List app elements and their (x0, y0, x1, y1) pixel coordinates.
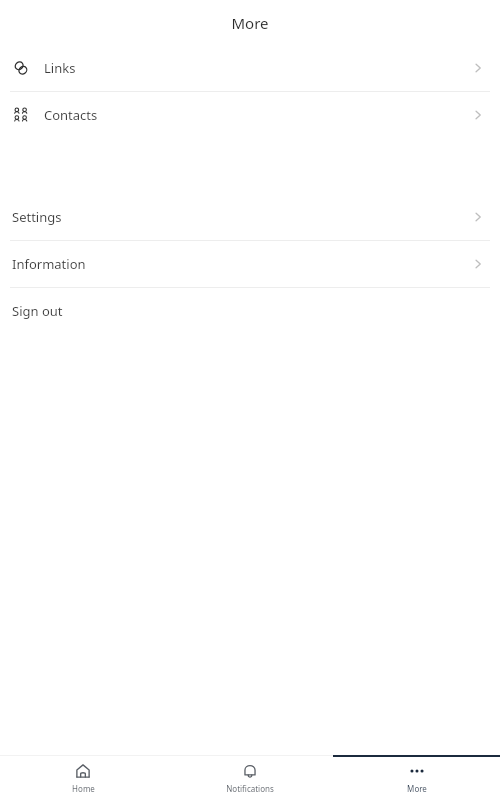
button[interactable]: Notifications (166, 755, 333, 800)
button[interactable]: Settings (0, 194, 500, 240)
button[interactable]: Contacts (0, 92, 500, 138)
staticText: More (231, 13, 269, 33)
staticText: More (407, 783, 427, 794)
button[interactable]: Home (0, 755, 166, 800)
staticText: Home (72, 783, 95, 794)
staticText: Settings (12, 208, 62, 226)
staticText: Contacts (44, 106, 98, 124)
staticText: Information (12, 255, 86, 273)
staticText: Sign out (12, 302, 63, 320)
button[interactable]: Sign out (0, 288, 500, 334)
staticText: Links (44, 59, 76, 77)
staticText: Notifications (226, 783, 274, 794)
button[interactable]: Information (0, 241, 500, 287)
button[interactable]: Links (0, 45, 500, 91)
button[interactable]: More (333, 755, 500, 800)
